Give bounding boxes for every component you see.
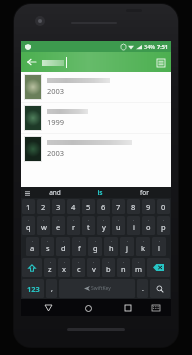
staticText: v xyxy=(92,264,96,274)
staticText: z xyxy=(48,264,52,274)
button[interactable]: 2 xyxy=(37,199,50,214)
staticText: 1 xyxy=(26,202,31,212)
button[interactable]: c xyxy=(72,258,85,277)
staticText: g xyxy=(93,243,98,253)
button[interactable]: . xyxy=(137,279,148,298)
button[interactable]: 4 xyxy=(67,199,80,214)
button[interactable]: 6 xyxy=(97,199,110,214)
button[interactable]: r xyxy=(67,216,80,235)
button[interactable]: 5 xyxy=(82,199,95,214)
button[interactable]: o xyxy=(142,216,155,235)
staticText: p xyxy=(161,222,166,232)
staticText: 123 xyxy=(27,284,40,294)
staticText: q xyxy=(26,222,31,232)
button[interactable]: 0 xyxy=(157,199,170,214)
staticText: x xyxy=(62,264,66,274)
staticText: k xyxy=(141,243,146,253)
staticText: 8 xyxy=(131,202,136,212)
button[interactable]: j xyxy=(120,237,134,256)
button[interactable]: k xyxy=(136,237,150,256)
staticText: for xyxy=(140,188,149,197)
staticText: and xyxy=(49,188,61,197)
staticText: i xyxy=(133,222,135,232)
button[interactable]: 1 xyxy=(22,199,35,214)
button[interactable]: e xyxy=(52,216,65,235)
staticText: s xyxy=(46,243,50,253)
button[interactable]: u xyxy=(112,216,125,235)
button[interactable]: 2003 xyxy=(21,134,171,164)
button[interactable]: h xyxy=(104,237,118,256)
staticText: 9 xyxy=(146,202,151,212)
button[interactable]: for xyxy=(122,187,167,198)
staticText: 2 xyxy=(41,202,46,212)
button[interactable]: 9 xyxy=(142,199,155,214)
staticText: 3 xyxy=(56,202,61,212)
staticText: 34% xyxy=(144,43,155,50)
staticText: o xyxy=(146,222,151,232)
button[interactable]: m xyxy=(132,258,145,277)
staticText: u xyxy=(116,222,121,232)
button[interactable]: 8 xyxy=(127,199,140,214)
staticText: 1999 xyxy=(47,117,65,127)
button[interactable]: 1999 xyxy=(21,103,171,133)
button[interactable]: Shift xyxy=(22,258,42,277)
button[interactable]: d xyxy=(56,237,70,256)
button[interactable]: Back xyxy=(41,301,55,315)
staticText: b xyxy=(106,264,111,274)
button[interactable]: i xyxy=(127,216,140,235)
button[interactable]: l xyxy=(152,237,166,256)
button[interactable]: a xyxy=(26,237,39,256)
button[interactable]: s xyxy=(41,237,54,256)
button[interactable]: v xyxy=(87,258,100,277)
staticText: is xyxy=(97,188,103,197)
button[interactable]: View options xyxy=(153,55,168,70)
button[interactable]: Back xyxy=(23,54,39,70)
staticText: 2003 xyxy=(47,86,65,96)
button[interactable]: Search xyxy=(150,279,170,298)
button[interactable]: x xyxy=(58,258,70,277)
staticText: n xyxy=(121,264,126,274)
button[interactable]: n xyxy=(117,258,130,277)
button[interactable]: 123 xyxy=(22,279,44,298)
button[interactable]: 3 xyxy=(52,199,65,214)
button[interactable]: 2003 xyxy=(21,72,171,102)
button[interactable]: Hide keyboard xyxy=(149,301,162,314)
button[interactable]: is xyxy=(77,187,122,198)
button[interactable]: b xyxy=(102,258,115,277)
button[interactable]: p xyxy=(157,216,170,235)
staticText: r xyxy=(72,222,76,232)
staticText: 5 xyxy=(86,202,91,212)
button[interactable]: y xyxy=(97,216,110,235)
button[interactable]: Space xyxy=(59,279,135,298)
staticText: 6 xyxy=(101,202,106,212)
staticText: c xyxy=(77,264,81,274)
button[interactable]: w xyxy=(37,216,50,235)
staticText: 4 xyxy=(71,202,76,212)
staticText: f xyxy=(78,243,81,253)
button[interactable]: z xyxy=(44,258,56,277)
button[interactable]: and xyxy=(32,187,77,198)
staticText: , xyxy=(51,284,53,294)
button[interactable]: 7 xyxy=(112,199,125,214)
button[interactable]: Keyboard menu xyxy=(23,189,31,197)
staticText: w xyxy=(41,222,47,232)
staticText: h xyxy=(109,243,114,253)
button[interactable]: f xyxy=(72,237,86,256)
button[interactable]: , xyxy=(46,279,57,298)
staticText: d xyxy=(61,243,66,253)
staticText: y xyxy=(102,222,106,232)
staticText: SwiftKey xyxy=(91,285,111,292)
button[interactable]: Backspace xyxy=(147,258,170,277)
staticText: 7 xyxy=(116,202,121,212)
staticText: j xyxy=(126,243,128,253)
button[interactable]: Recents xyxy=(121,301,135,315)
button[interactable]: g xyxy=(88,237,102,256)
staticText: e xyxy=(56,222,61,232)
staticText: a xyxy=(30,243,35,253)
button[interactable]: t xyxy=(82,216,95,235)
button[interactable]: Home xyxy=(81,301,95,315)
staticText: . xyxy=(142,284,144,294)
staticText: 7:51 xyxy=(157,43,168,50)
button[interactable]: q xyxy=(22,216,35,235)
staticText: t xyxy=(87,222,90,232)
